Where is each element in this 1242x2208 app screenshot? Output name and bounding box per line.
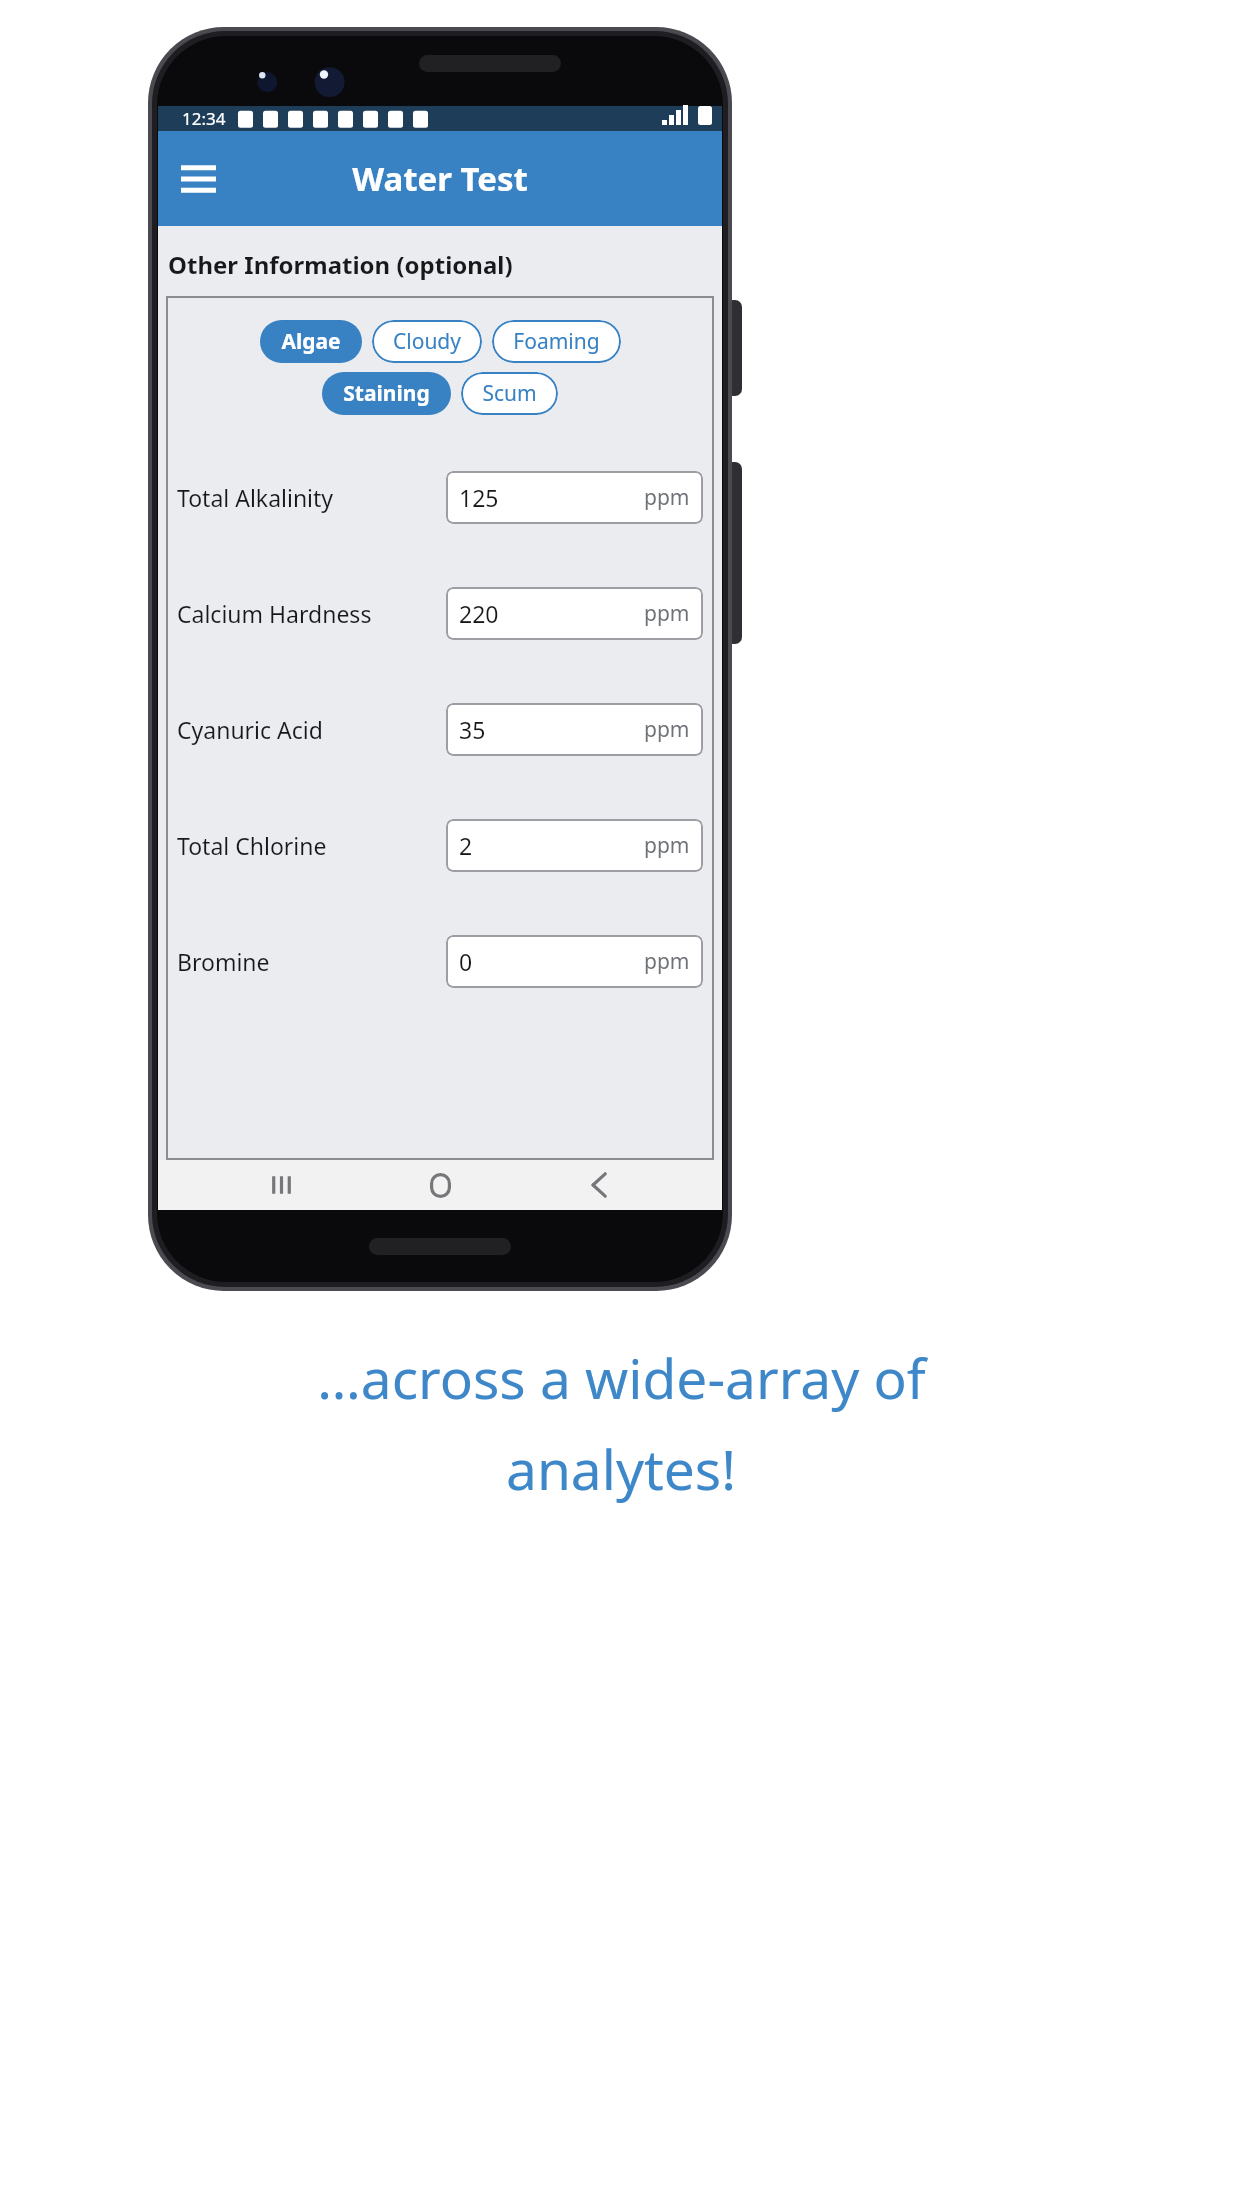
button[interactable]: Staining	[322, 372, 451, 415]
button[interactable]: 0	[446, 935, 703, 988]
button[interactable]: Recent apps	[245, 1160, 317, 1210]
staticText: 12:34	[182, 107, 226, 130]
staticText: 125	[459, 482, 499, 513]
staticText: Staining	[343, 379, 430, 408]
button[interactable]: Open navigation menu	[166, 147, 230, 211]
button[interactable]: Algae	[260, 320, 362, 363]
staticText: Total Alkalinity	[177, 482, 446, 513]
button[interactable]: Back	[563, 1160, 635, 1210]
button[interactable]: 125	[446, 471, 703, 524]
staticText: Water Test	[352, 156, 528, 201]
staticText: Cyanuric Acid	[177, 714, 446, 745]
button[interactable]: 35	[446, 703, 703, 756]
button[interactable]: Foaming	[492, 320, 621, 363]
button[interactable]: Cloudy	[372, 320, 482, 363]
staticText: …across a wide-array of	[317, 1340, 926, 1415]
button[interactable]: Scum	[461, 372, 558, 415]
staticText: 220	[459, 598, 499, 629]
staticText: ppm	[644, 715, 690, 744]
staticText: ppm	[644, 599, 690, 628]
staticText: Other Information (optional)	[168, 248, 513, 281]
staticText: ppm	[644, 947, 690, 976]
staticText: Calcium Hardness	[177, 598, 446, 629]
staticText: Total Chlorine	[177, 830, 446, 861]
staticText: 35	[459, 714, 486, 745]
staticText: Foaming	[513, 327, 600, 356]
staticText: ppm	[644, 483, 690, 512]
staticText: ppm	[644, 831, 690, 860]
button[interactable]: 220	[446, 587, 703, 640]
button[interactable]: 2	[446, 819, 703, 872]
button[interactable]: Home	[404, 1160, 476, 1210]
staticText: Bromine	[177, 946, 446, 977]
staticText: Algae	[281, 327, 341, 356]
staticText: Cloudy	[393, 327, 461, 356]
staticText: analytes!	[506, 1431, 736, 1506]
staticText: 0	[459, 946, 473, 977]
staticText: Scum	[482, 379, 537, 408]
staticText: 2	[459, 830, 473, 861]
